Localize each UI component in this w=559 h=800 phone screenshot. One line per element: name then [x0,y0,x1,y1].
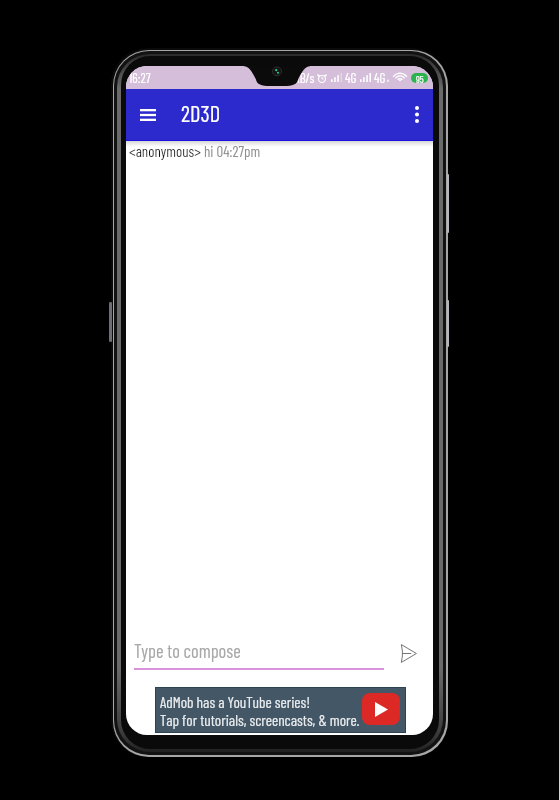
button[interactable]: AdMob has a YouTube series! [155,687,406,733]
staticText: 0KB/s [288,70,315,86]
staticText: 2D3D [181,99,221,126]
staticText: 4G [345,70,357,86]
staticText: <anonymous> [129,142,201,160]
staticText: 16:27 [129,70,151,86]
staticText: Tap for tutorials, screencasts, & more. [160,711,360,729]
button[interactable]: Open navigation menu [128,95,167,134]
staticText: hi 04:27pm [204,142,261,160]
button[interactable]: Type to compose [132,636,386,674]
button[interactable]: Send message [391,636,425,670]
staticText: Type to compose [134,639,241,661]
staticText: AdMob has a YouTube series! [160,693,311,711]
staticText: 95 [416,73,424,83]
staticText: 4G [374,70,386,86]
button[interactable]: More options [398,96,433,133]
